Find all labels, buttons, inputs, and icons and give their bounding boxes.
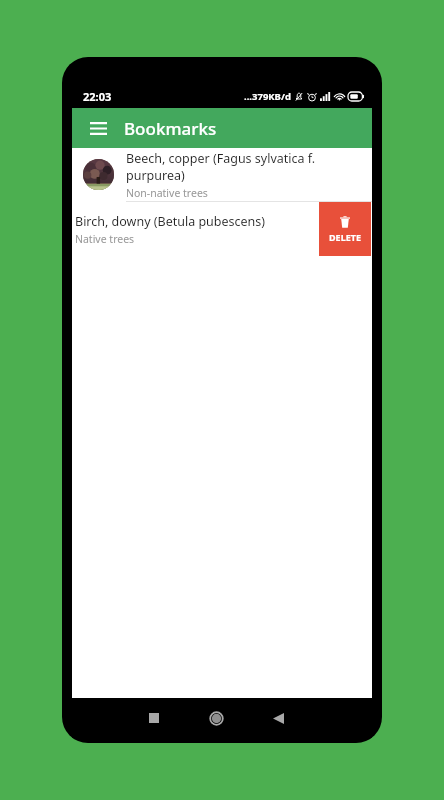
staticText: Non-native trees — [126, 186, 208, 200]
staticText: Beech, copper (Fagus sylvatica f. purpur… — [126, 150, 372, 184]
button[interactable]: Back — [256, 698, 300, 738]
button[interactable]: Beech, copper (Fagus sylvatica f. purpur… — [72, 148, 372, 201]
button[interactable]: DELETE — [319, 202, 371, 256]
staticText: DELETE — [329, 231, 361, 243]
staticText: ...379KB/d — [244, 90, 291, 103]
staticText: Native trees — [75, 232, 135, 246]
button[interactable]: Home — [194, 698, 238, 738]
button[interactable]: Open navigation menu — [81, 111, 115, 145]
staticText: Bookmarks — [124, 117, 217, 140]
staticText: 22:03 — [83, 89, 112, 104]
staticText: Birch, downy (Betula pubescens) — [75, 213, 266, 230]
button[interactable]: Recent apps — [132, 698, 176, 738]
button[interactable]: Birch, downy (Betula pubescens) — [72, 202, 372, 256]
